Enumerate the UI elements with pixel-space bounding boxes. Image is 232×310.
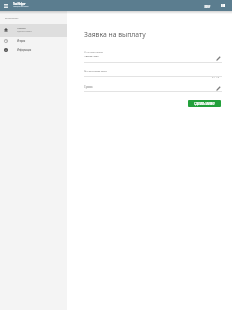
staticText: Главная — [17, 26, 26, 29]
staticText: Taxi Helper — [13, 2, 26, 6]
staticText: История — [17, 39, 25, 43]
staticText: Вы вошли как — [5, 17, 19, 20]
button[interactable]: Edit — [216, 56, 221, 61]
button[interactable]: Open navigation menu — [4, 4, 8, 8]
staticText: ФИО получателя — [84, 50, 103, 53]
staticText: № счета/номер карты — [84, 69, 108, 72]
staticText: Сумма — [84, 85, 93, 89]
staticText: Сделать заявку — [17, 30, 32, 33]
button[interactable]: Edit — [216, 86, 221, 91]
staticText: СДЕЛАТЬ ЗАЯВКУ — [194, 102, 215, 106]
staticText: Информация — [17, 48, 32, 52]
button[interactable] — [0, 24, 67, 37]
button[interactable]: Account balance — [220, 2, 226, 8]
staticText: Иванов Иван — [84, 54, 99, 57]
button[interactable] — [0, 37, 67, 46]
button[interactable]: СДЕЛАТЬ ЗАЯВКУ — [188, 100, 221, 107]
staticText: 0 / 16 — [212, 76, 220, 79]
staticText: 39039 ₽ — [204, 5, 210, 9]
staticText: Заявка на выплату — [84, 30, 146, 39]
button[interactable] — [0, 45, 67, 54]
staticText: Помощь Ваших Финансов — [13, 5, 29, 7]
